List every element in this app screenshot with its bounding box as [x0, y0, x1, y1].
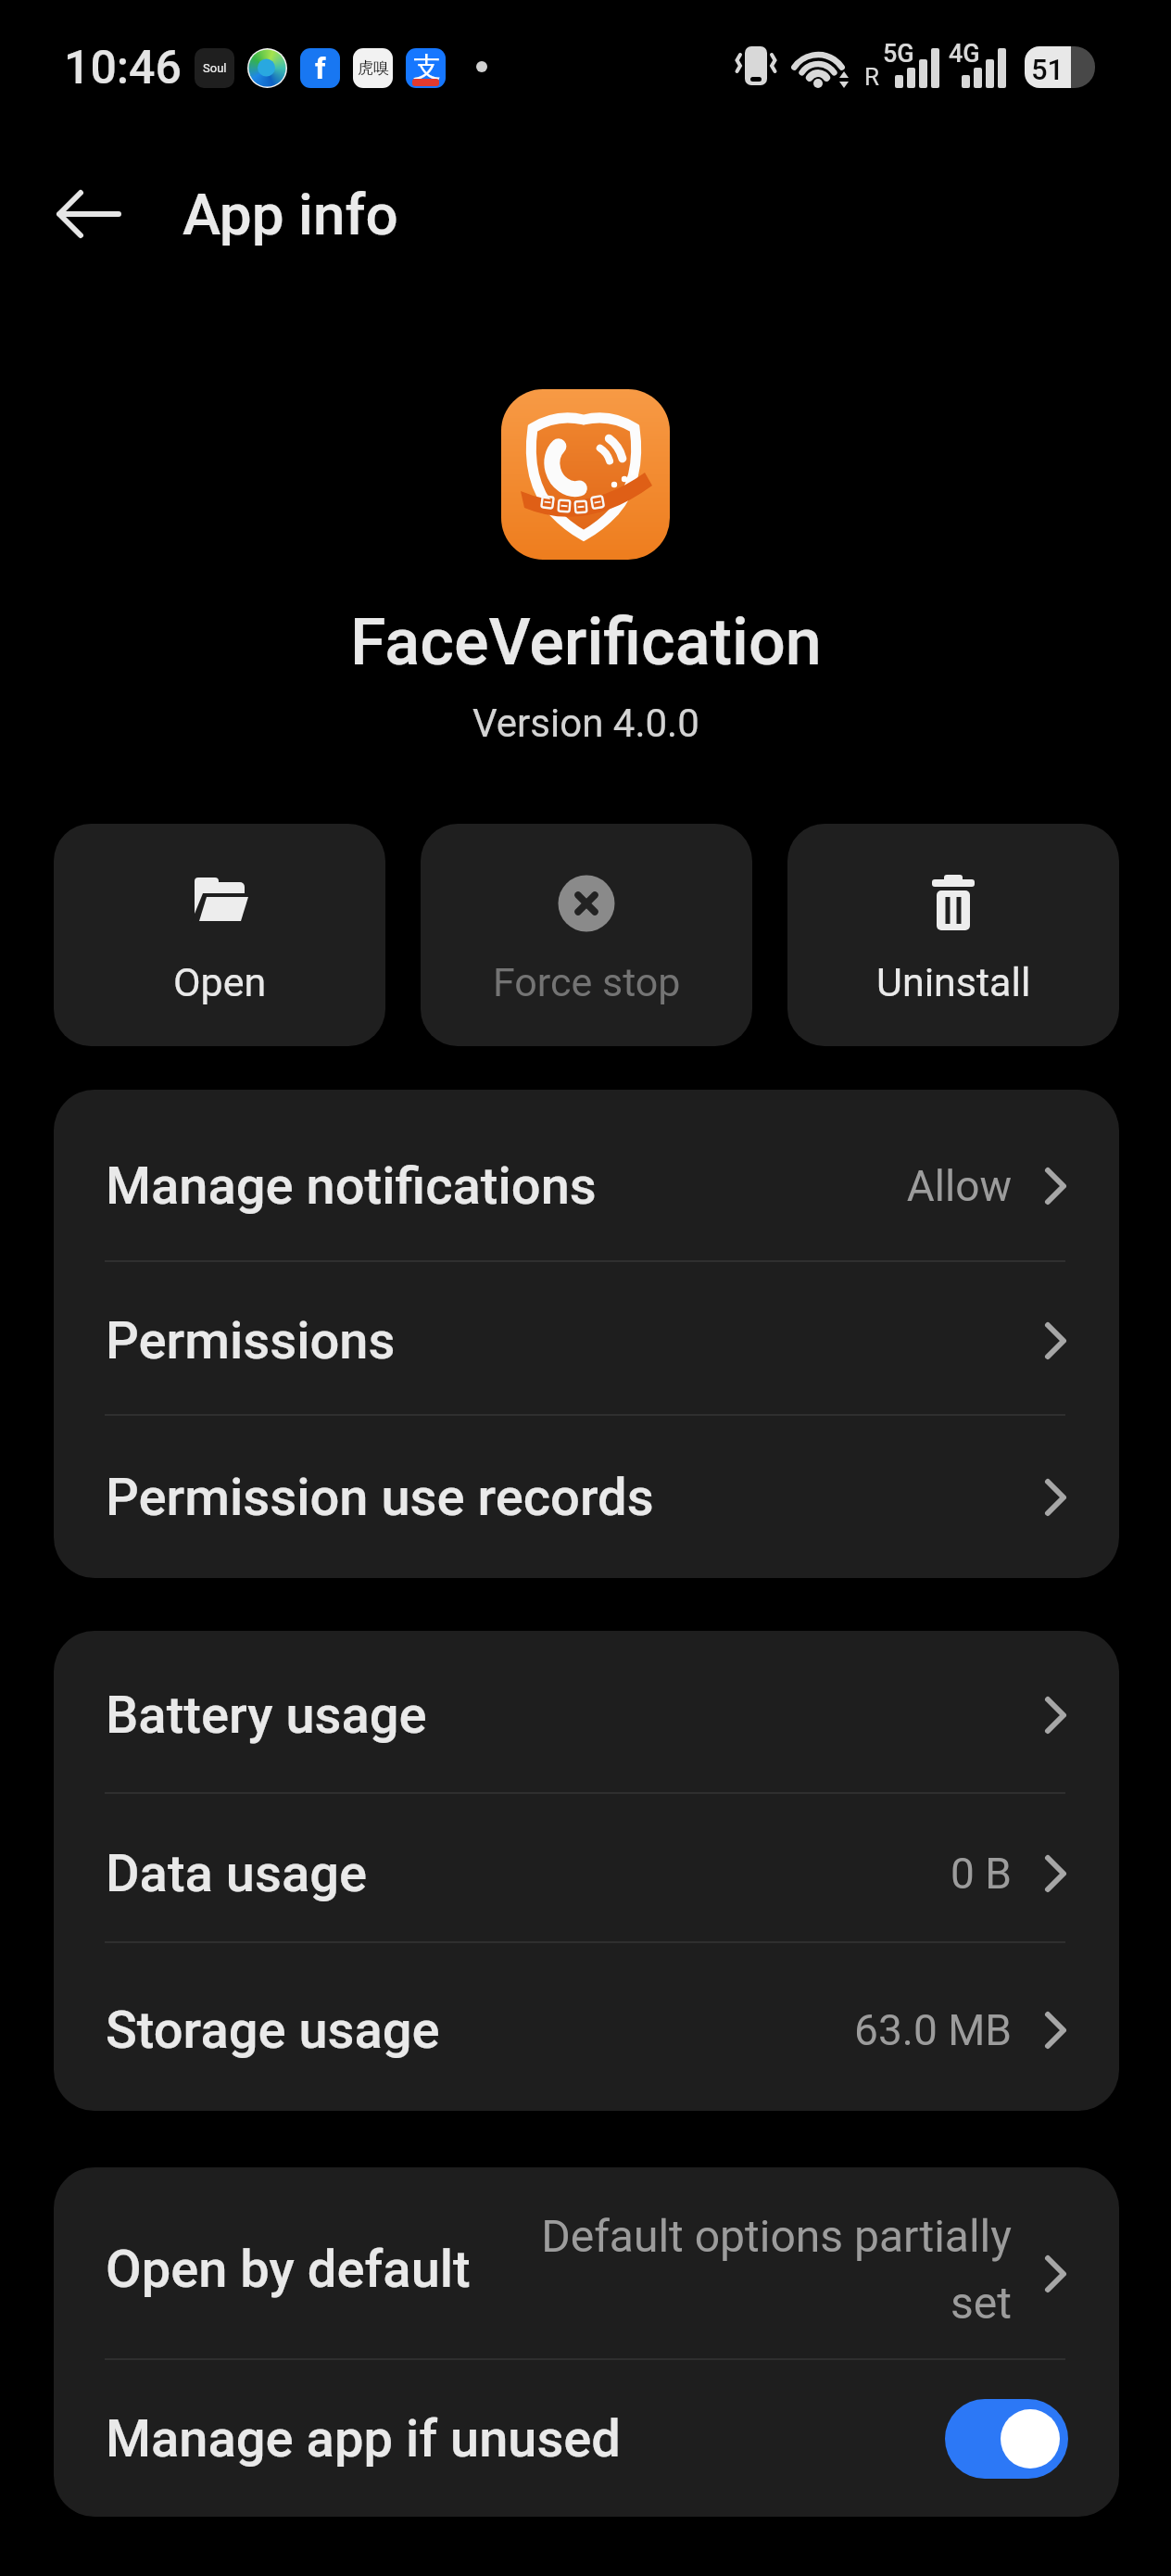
staticText: Open: [173, 959, 267, 1005]
staticText: 支: [413, 50, 441, 85]
staticText: 10:46: [64, 41, 182, 95]
button[interactable]: Permissions: [54, 1262, 1119, 1414]
button[interactable]: Manage app if unused: [54, 2360, 1119, 2517]
staticText: 51: [1031, 53, 1064, 86]
staticText: 5G: [883, 39, 914, 69]
button[interactable]: Force stop: [421, 824, 752, 1046]
staticText: Permission use records: [106, 1467, 654, 1528]
button[interactable]: Storage usage: [54, 1943, 1119, 2111]
staticText: 4G: [949, 39, 980, 69]
staticText: Manage notifications: [106, 1155, 597, 1217]
staticText: Open by default: [106, 2239, 471, 2300]
staticText: R: [864, 63, 880, 91]
staticText: Default options partially set: [511, 2210, 1012, 2330]
button[interactable]: Battery usage: [54, 1638, 1119, 1792]
staticText: 虎嗅: [358, 58, 389, 78]
button[interactable]: Open: [54, 824, 385, 1046]
staticText: App info: [183, 181, 398, 248]
button[interactable]: [37, 171, 139, 257]
staticText: Data usage: [106, 1843, 367, 1904]
staticText: Allow: [906, 1161, 1012, 1211]
staticText: Manage app if unused: [106, 2408, 622, 2469]
button[interactable]: [945, 2399, 1068, 2479]
staticText: 0 B: [951, 1849, 1012, 1899]
button[interactable]: Manage notifications: [54, 1103, 1119, 1260]
staticText: Storage usage: [106, 2000, 440, 2061]
staticText: Soul: [203, 61, 227, 75]
staticText: Version 4.0.0: [472, 701, 699, 746]
button[interactable]: Permission use records: [54, 1416, 1119, 1578]
staticText: FaceVerification: [350, 604, 822, 680]
button[interactable]: Open by default: [54, 2167, 1119, 2358]
button[interactable]: Data usage: [54, 1794, 1119, 1941]
staticText: Battery usage: [106, 1685, 427, 1746]
staticText: 63.0 MB: [854, 2005, 1012, 2055]
staticText: Uninstall: [876, 959, 1031, 1005]
staticText: Force stop: [493, 959, 681, 1005]
staticText: Permissions: [106, 1310, 396, 1371]
button[interactable]: Uninstall: [787, 824, 1119, 1046]
staticText: f: [315, 51, 326, 86]
